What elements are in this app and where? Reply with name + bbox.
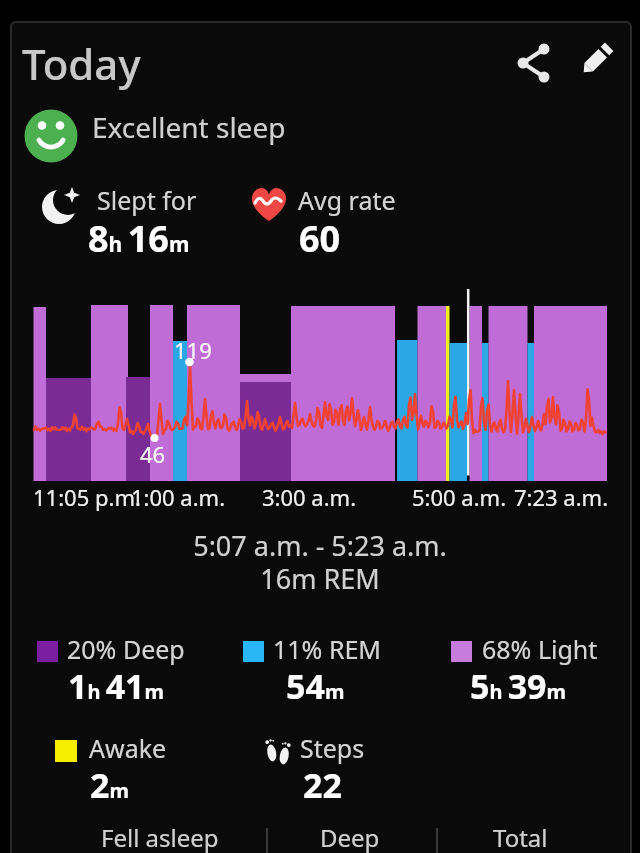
staticText: 5:07 a.m. - 5:23 a.m. xyxy=(0,527,640,564)
staticText: Total xyxy=(493,821,548,853)
button[interactable] xyxy=(514,42,554,82)
staticText: 1:00 a.m. xyxy=(131,482,226,512)
staticText: 46 xyxy=(140,439,166,469)
button[interactable] xyxy=(574,40,616,82)
staticText: Today xyxy=(22,35,141,92)
staticText: 11:05 p.m. xyxy=(33,482,141,512)
staticText: Excellent sleep xyxy=(92,108,286,146)
staticText: Fell asleep xyxy=(101,821,219,853)
staticText: 20% Deep xyxy=(67,632,185,666)
staticText: 16m REM xyxy=(0,560,640,597)
staticText: 60 xyxy=(299,214,341,263)
staticText: Steps xyxy=(300,731,365,765)
staticText: Deep xyxy=(320,821,380,853)
staticText: 7:23 a.m. xyxy=(514,482,609,512)
staticText: 5h 39m xyxy=(470,663,567,709)
button[interactable]: Deep xyxy=(290,821,410,853)
staticText: 1h 41m xyxy=(68,663,165,709)
staticText: 54m xyxy=(286,663,345,709)
staticText: Awake xyxy=(89,731,167,765)
staticText: 119 xyxy=(174,335,212,365)
staticText: 3:00 a.m. xyxy=(262,482,357,512)
staticText: 5:00 a.m. xyxy=(412,482,507,512)
staticText: 11% REM xyxy=(273,632,382,666)
staticText: 2m xyxy=(90,762,129,808)
staticText: 8h 16m xyxy=(88,214,190,263)
staticText: 68% Light xyxy=(482,632,598,666)
staticText: Slept for xyxy=(97,183,197,217)
button[interactable] xyxy=(23,108,79,164)
button[interactable]: Total xyxy=(460,821,580,853)
button[interactable]: Fell asleep xyxy=(90,821,230,853)
staticText: Avg rate xyxy=(298,183,396,217)
staticText: 22 xyxy=(303,762,342,808)
